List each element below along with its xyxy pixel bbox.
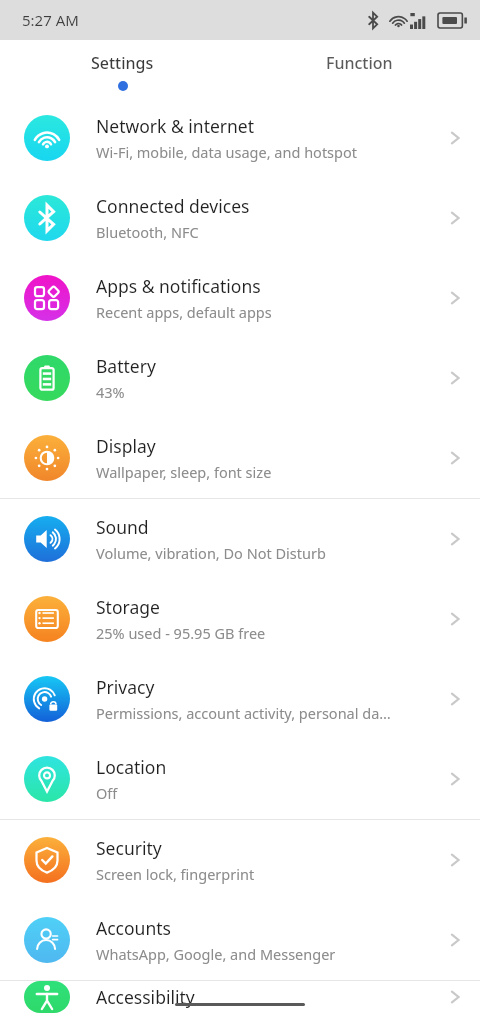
- staticText: Location: [96, 755, 167, 779]
- staticText: Recent apps, default apps: [96, 302, 272, 322]
- staticText: 25% used - 95.95 GB free: [96, 623, 266, 643]
- staticText: Settings: [91, 52, 154, 74]
- staticText: Security: [96, 836, 162, 860]
- button[interactable]: Network & internet: [0, 98, 480, 178]
- staticText: Screen lock, fingerprint: [96, 864, 255, 884]
- staticText: 43%: [96, 382, 125, 402]
- staticText: Wi-Fi, mobile, data usage, and hotspot: [96, 142, 357, 162]
- staticText: Apps & notifications: [96, 274, 261, 298]
- staticText: Connected devices: [96, 194, 250, 218]
- button[interactable]: Sound: [0, 499, 480, 579]
- button[interactable]: Display: [0, 418, 480, 498]
- staticText: 5:27 AM: [22, 10, 79, 30]
- button[interactable]: Privacy: [0, 659, 480, 739]
- button[interactable]: Settings: [40, 40, 205, 98]
- staticText: Display: [96, 434, 156, 458]
- button[interactable]: Security: [0, 820, 480, 900]
- staticText: Storage: [96, 595, 160, 619]
- staticText: Wallpaper, sleep, font size: [96, 462, 272, 482]
- staticText: Privacy: [96, 675, 155, 699]
- staticText: WhatsApp, Google, and Messenger: [96, 944, 336, 964]
- staticText: Function: [326, 52, 393, 74]
- button[interactable]: Connected devices: [0, 178, 480, 258]
- staticText: Battery: [96, 354, 156, 378]
- staticText: Permissions, account activity, personal …: [96, 703, 391, 723]
- button[interactable]: Accounts: [0, 900, 480, 980]
- button[interactable]: Battery: [0, 338, 480, 418]
- staticText: Network & internet: [96, 114, 255, 138]
- staticText: Off: [96, 783, 118, 803]
- staticText: Bluetooth, NFC: [96, 222, 199, 242]
- button[interactable]: Location: [0, 739, 480, 819]
- button[interactable]: Storage: [0, 579, 480, 659]
- staticText: Sound: [96, 515, 149, 539]
- button[interactable]: Function: [277, 40, 442, 98]
- button[interactable]: Apps & notifications: [0, 258, 480, 338]
- staticText: Volume, vibration, Do Not Disturb: [96, 543, 326, 563]
- button[interactable]: Accessibility: [0, 981, 480, 1013]
- staticText: Accounts: [96, 916, 171, 940]
- staticText: Accessibility: [96, 985, 195, 1009]
